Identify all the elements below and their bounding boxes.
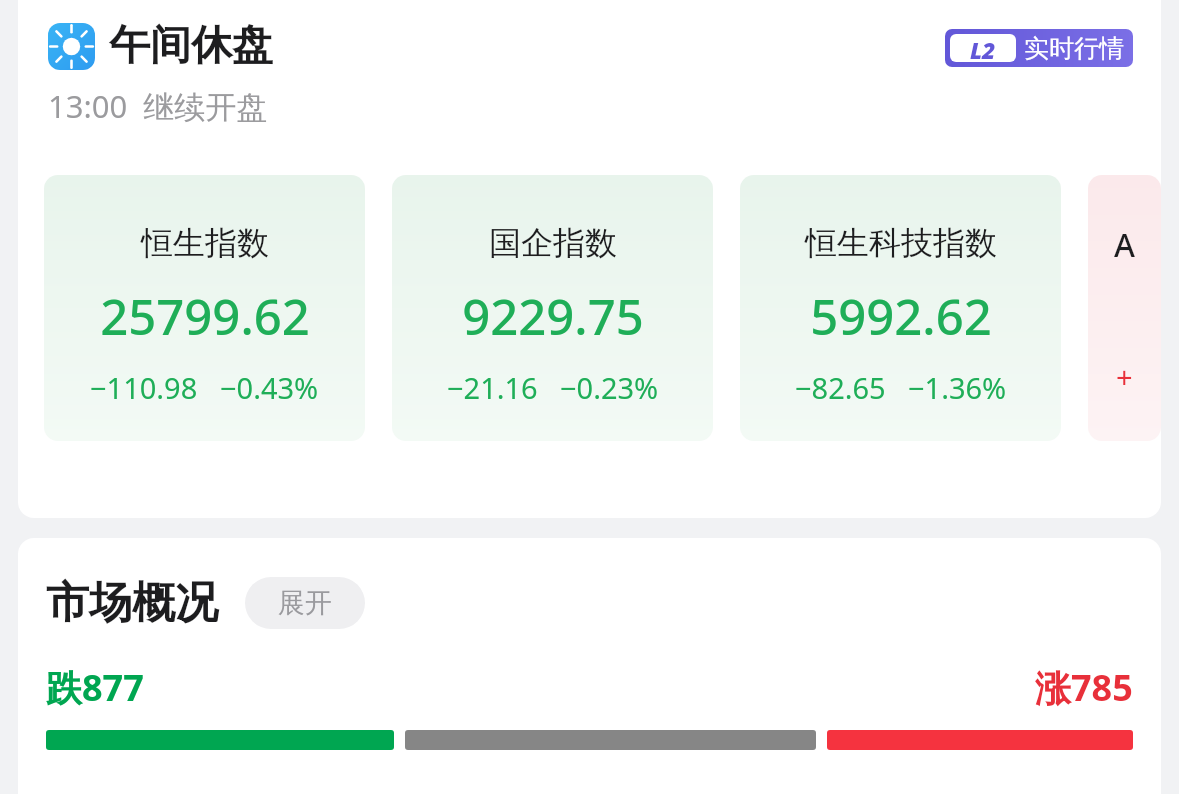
staticText: + <box>1116 357 1133 396</box>
staticText: 13:00 继续开盘 <box>48 85 268 127</box>
staticText: 跌877 <box>46 663 144 712</box>
staticText: 恒生指数 <box>141 223 269 263</box>
staticText: A <box>1114 223 1135 267</box>
staticText: 展开 <box>278 586 332 620</box>
staticText: 涨785 <box>1035 663 1133 712</box>
other: 午间休盘 <box>48 23 95 70</box>
staticText: 恒生科技指数 <box>805 223 997 263</box>
button[interactable]: 国企指数 <box>392 175 713 441</box>
staticText: −21.16 <box>447 368 538 407</box>
button[interactable]: L2 <box>945 29 1133 67</box>
staticText: −82.65 <box>795 368 886 407</box>
staticText: 实时行情 <box>1024 33 1124 64</box>
staticText: −1.36% <box>908 368 1007 407</box>
staticText: −0.43% <box>220 368 319 407</box>
button[interactable]: A <box>1088 175 1161 441</box>
staticText: 市场概况 <box>46 576 218 630</box>
button[interactable]: 展开 <box>245 577 365 629</box>
staticText: −0.23% <box>560 368 659 407</box>
staticText: 25799.62 <box>100 283 310 350</box>
button[interactable]: 恒生指数 <box>44 175 365 441</box>
staticText: 午间休盘 <box>109 20 273 72</box>
button[interactable]: 恒生科技指数 <box>740 175 1061 441</box>
staticText: 9229.75 <box>462 283 644 350</box>
staticText: −110.98 <box>90 368 198 407</box>
staticText: L2 <box>970 34 996 62</box>
staticText: 国企指数 <box>489 223 617 263</box>
staticText: 5992.62 <box>810 283 992 350</box>
